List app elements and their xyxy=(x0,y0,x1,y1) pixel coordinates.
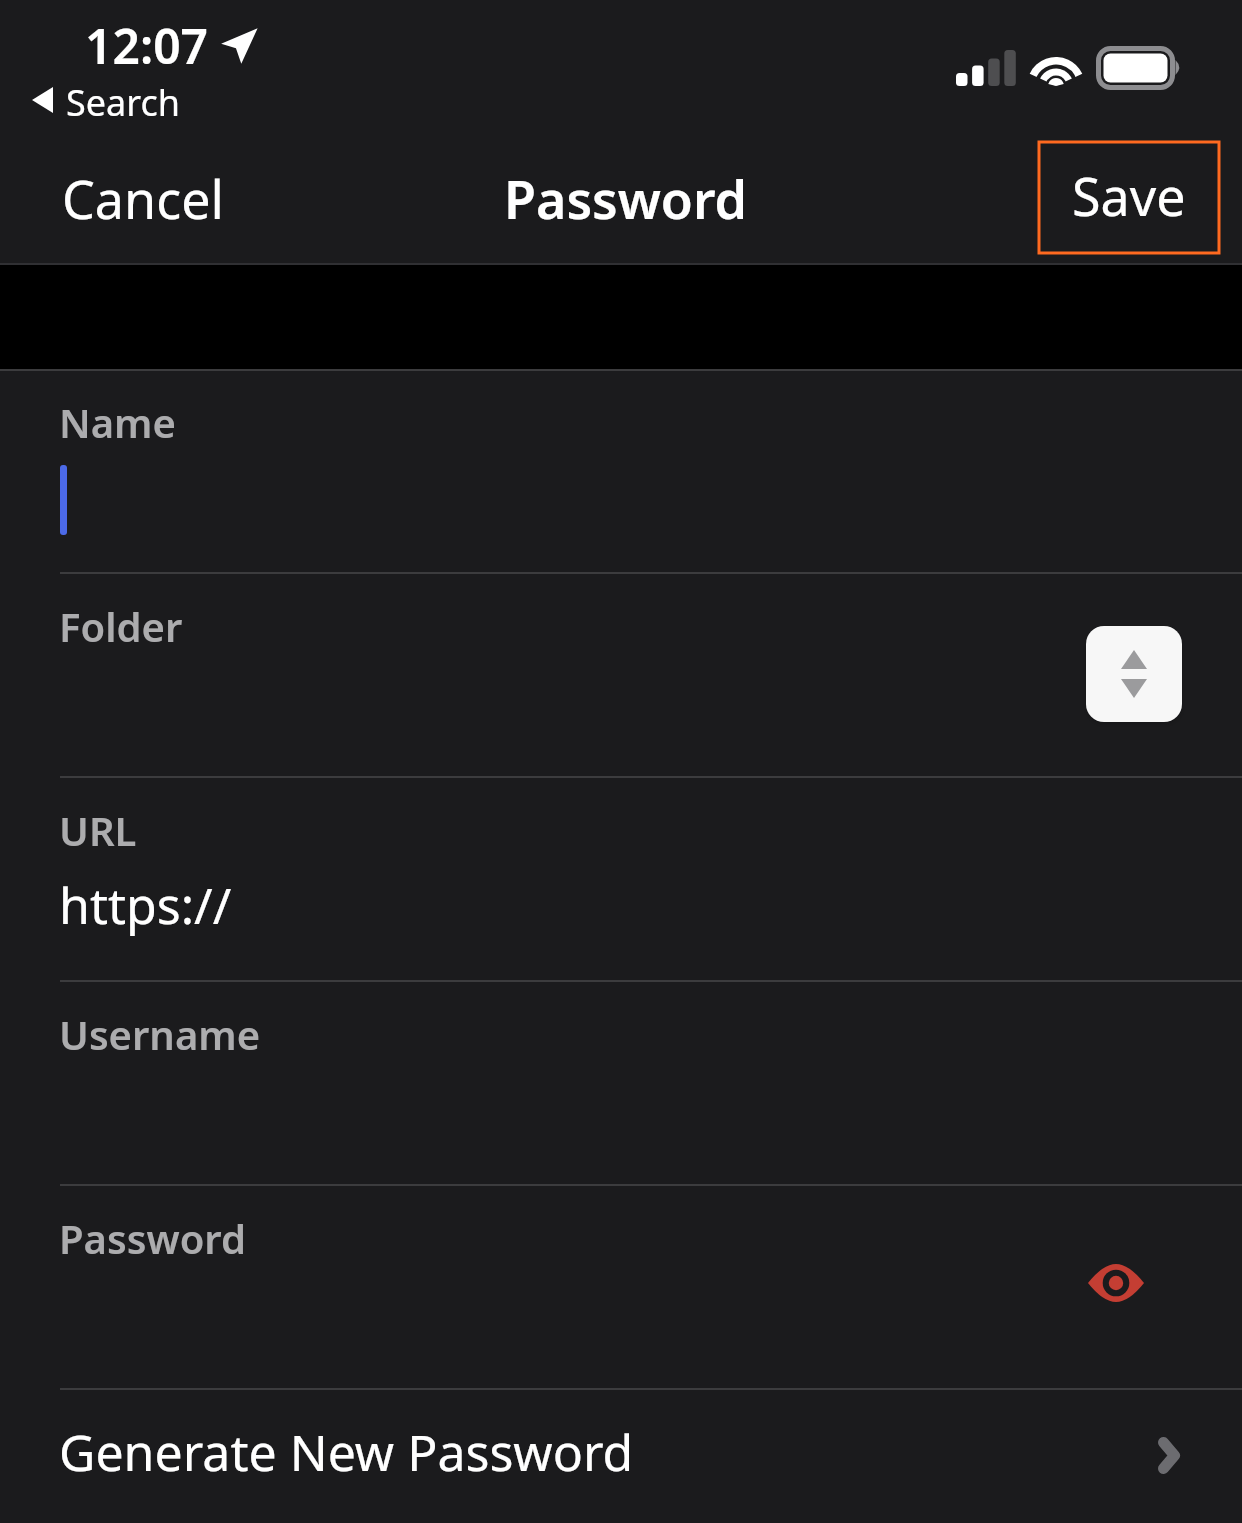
button[interactable]: Show password xyxy=(1078,1250,1154,1316)
button[interactable]: Name xyxy=(0,370,1242,572)
staticText: Search xyxy=(66,78,180,127)
button[interactable]: Save xyxy=(1039,142,1219,253)
staticText: Generate New Password xyxy=(59,1418,634,1486)
button[interactable]: Search xyxy=(22,78,136,127)
staticText: URL xyxy=(59,803,137,857)
staticText: Cancel xyxy=(62,163,224,234)
button[interactable]: Password xyxy=(0,1186,1242,1388)
button[interactable]: Username xyxy=(0,982,1242,1184)
button[interactable]: Choose folder xyxy=(1086,626,1182,722)
button[interactable]: Folder xyxy=(0,574,1242,776)
staticText: Username xyxy=(59,1007,261,1061)
staticText: Save xyxy=(1072,160,1186,231)
staticText: Password xyxy=(59,1211,246,1265)
button[interactable]: Generate New Password xyxy=(0,1390,1242,1523)
staticText: 12:07 xyxy=(85,13,209,78)
staticText: Password xyxy=(504,163,747,234)
staticText: Folder xyxy=(59,599,183,653)
button[interactable]: Cancel xyxy=(26,151,260,246)
staticText: Name xyxy=(59,395,176,449)
staticText: https:// xyxy=(59,871,232,939)
button[interactable]: URL xyxy=(0,778,1242,980)
